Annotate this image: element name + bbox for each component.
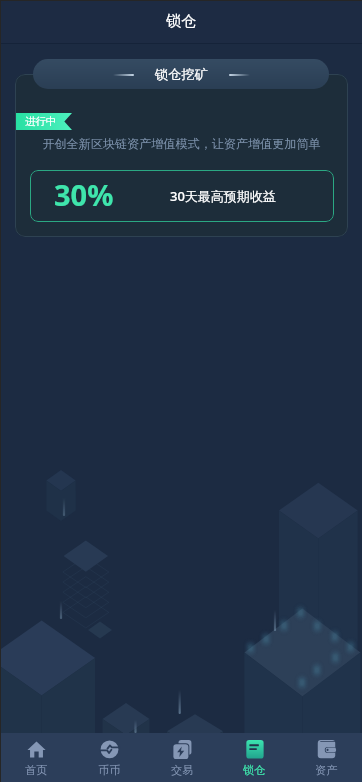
staticText: 锁仓 (243, 763, 266, 777)
staticText: 30% (54, 175, 114, 214)
staticText: 锁仓挖矿 (155, 66, 208, 83)
staticText: 锁仓 (166, 12, 196, 31)
staticText: 进行中 (25, 115, 57, 128)
button[interactable]: 交易 (146, 733, 218, 782)
staticText: 30天最高预期收益 (170, 187, 276, 205)
staticText: 开创全新区块链资产增值模式，让资产增值更加简单 (15, 136, 348, 151)
button[interactable]: 首页 (0, 733, 73, 782)
staticText: 首页 (25, 763, 48, 777)
staticText: 币币 (98, 763, 121, 777)
button[interactable]: 币币 (73, 733, 146, 782)
button[interactable]: 锁仓 (218, 733, 290, 782)
staticText: 交易 (171, 763, 194, 777)
button[interactable]: 资产 (290, 733, 362, 782)
staticText: 资产 (315, 763, 338, 777)
